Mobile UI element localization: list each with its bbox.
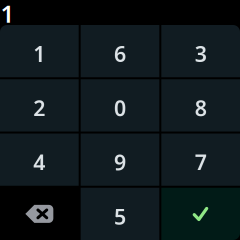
button[interactable]: 1 [0,25,79,77]
button[interactable]: 3 [161,25,240,77]
staticText: 3 [195,39,207,68]
staticText: 1 [33,39,45,68]
staticText: 8 [195,94,207,122]
staticText: 4 [33,148,45,176]
staticText: 5 [114,202,126,230]
staticText: 7 [195,148,207,176]
button[interactable]: 8 [161,79,240,131]
staticText: 1 [0,0,14,29]
staticText: 6 [114,39,126,68]
button[interactable]: 0 [81,79,159,131]
staticText: 9 [114,148,126,176]
button[interactable]: 6 [81,25,159,77]
staticText: 2 [33,94,45,122]
staticText: 0 [114,94,126,122]
button[interactable]: 5 [81,188,159,240]
button[interactable]: Delete [0,188,79,240]
button[interactable]: 4 [0,133,79,186]
button[interactable]: 7 [161,133,240,186]
button[interactable]: 9 [81,133,159,186]
button[interactable]: 2 [0,79,79,131]
button[interactable]: Confirm [161,188,240,240]
